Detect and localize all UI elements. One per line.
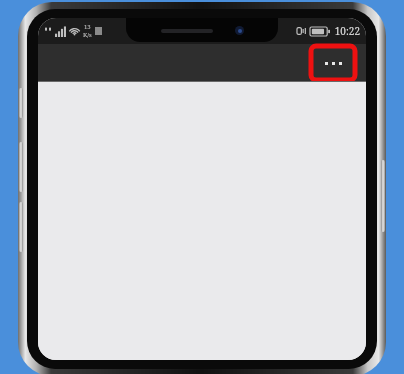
staticText: 10:22: [334, 24, 360, 38]
staticText: 13: [84, 23, 91, 31]
button[interactable]: More options: [310, 45, 356, 81]
staticText: K/s: [83, 31, 92, 39]
